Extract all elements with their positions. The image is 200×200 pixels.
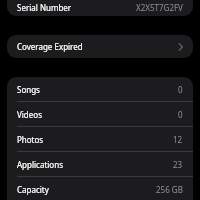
staticText: 12 xyxy=(173,134,183,145)
staticText: Videos xyxy=(17,109,42,120)
staticText: Songs xyxy=(17,84,40,95)
staticText: 0 xyxy=(178,109,183,120)
staticText: 23 xyxy=(173,159,183,170)
staticText: Coverage Expired xyxy=(17,41,83,52)
staticText: Photos xyxy=(17,134,44,145)
staticText: Serial Number xyxy=(17,2,72,13)
staticText: 256 GB xyxy=(156,184,183,195)
staticText: Applications xyxy=(17,159,63,170)
staticText: X2X5T7G2FV xyxy=(136,2,183,13)
button[interactable]: Capacity xyxy=(7,177,193,200)
staticText: 0 xyxy=(178,84,183,95)
button[interactable]: Applications xyxy=(7,152,193,176)
button[interactable]: Serial Number xyxy=(7,0,193,16)
button[interactable]: Coverage Expired xyxy=(7,35,193,58)
button[interactable]: Songs xyxy=(7,77,193,101)
button[interactable]: Photos xyxy=(7,127,193,151)
button[interactable]: Videos xyxy=(7,102,193,126)
staticText: Capacity xyxy=(17,184,49,195)
